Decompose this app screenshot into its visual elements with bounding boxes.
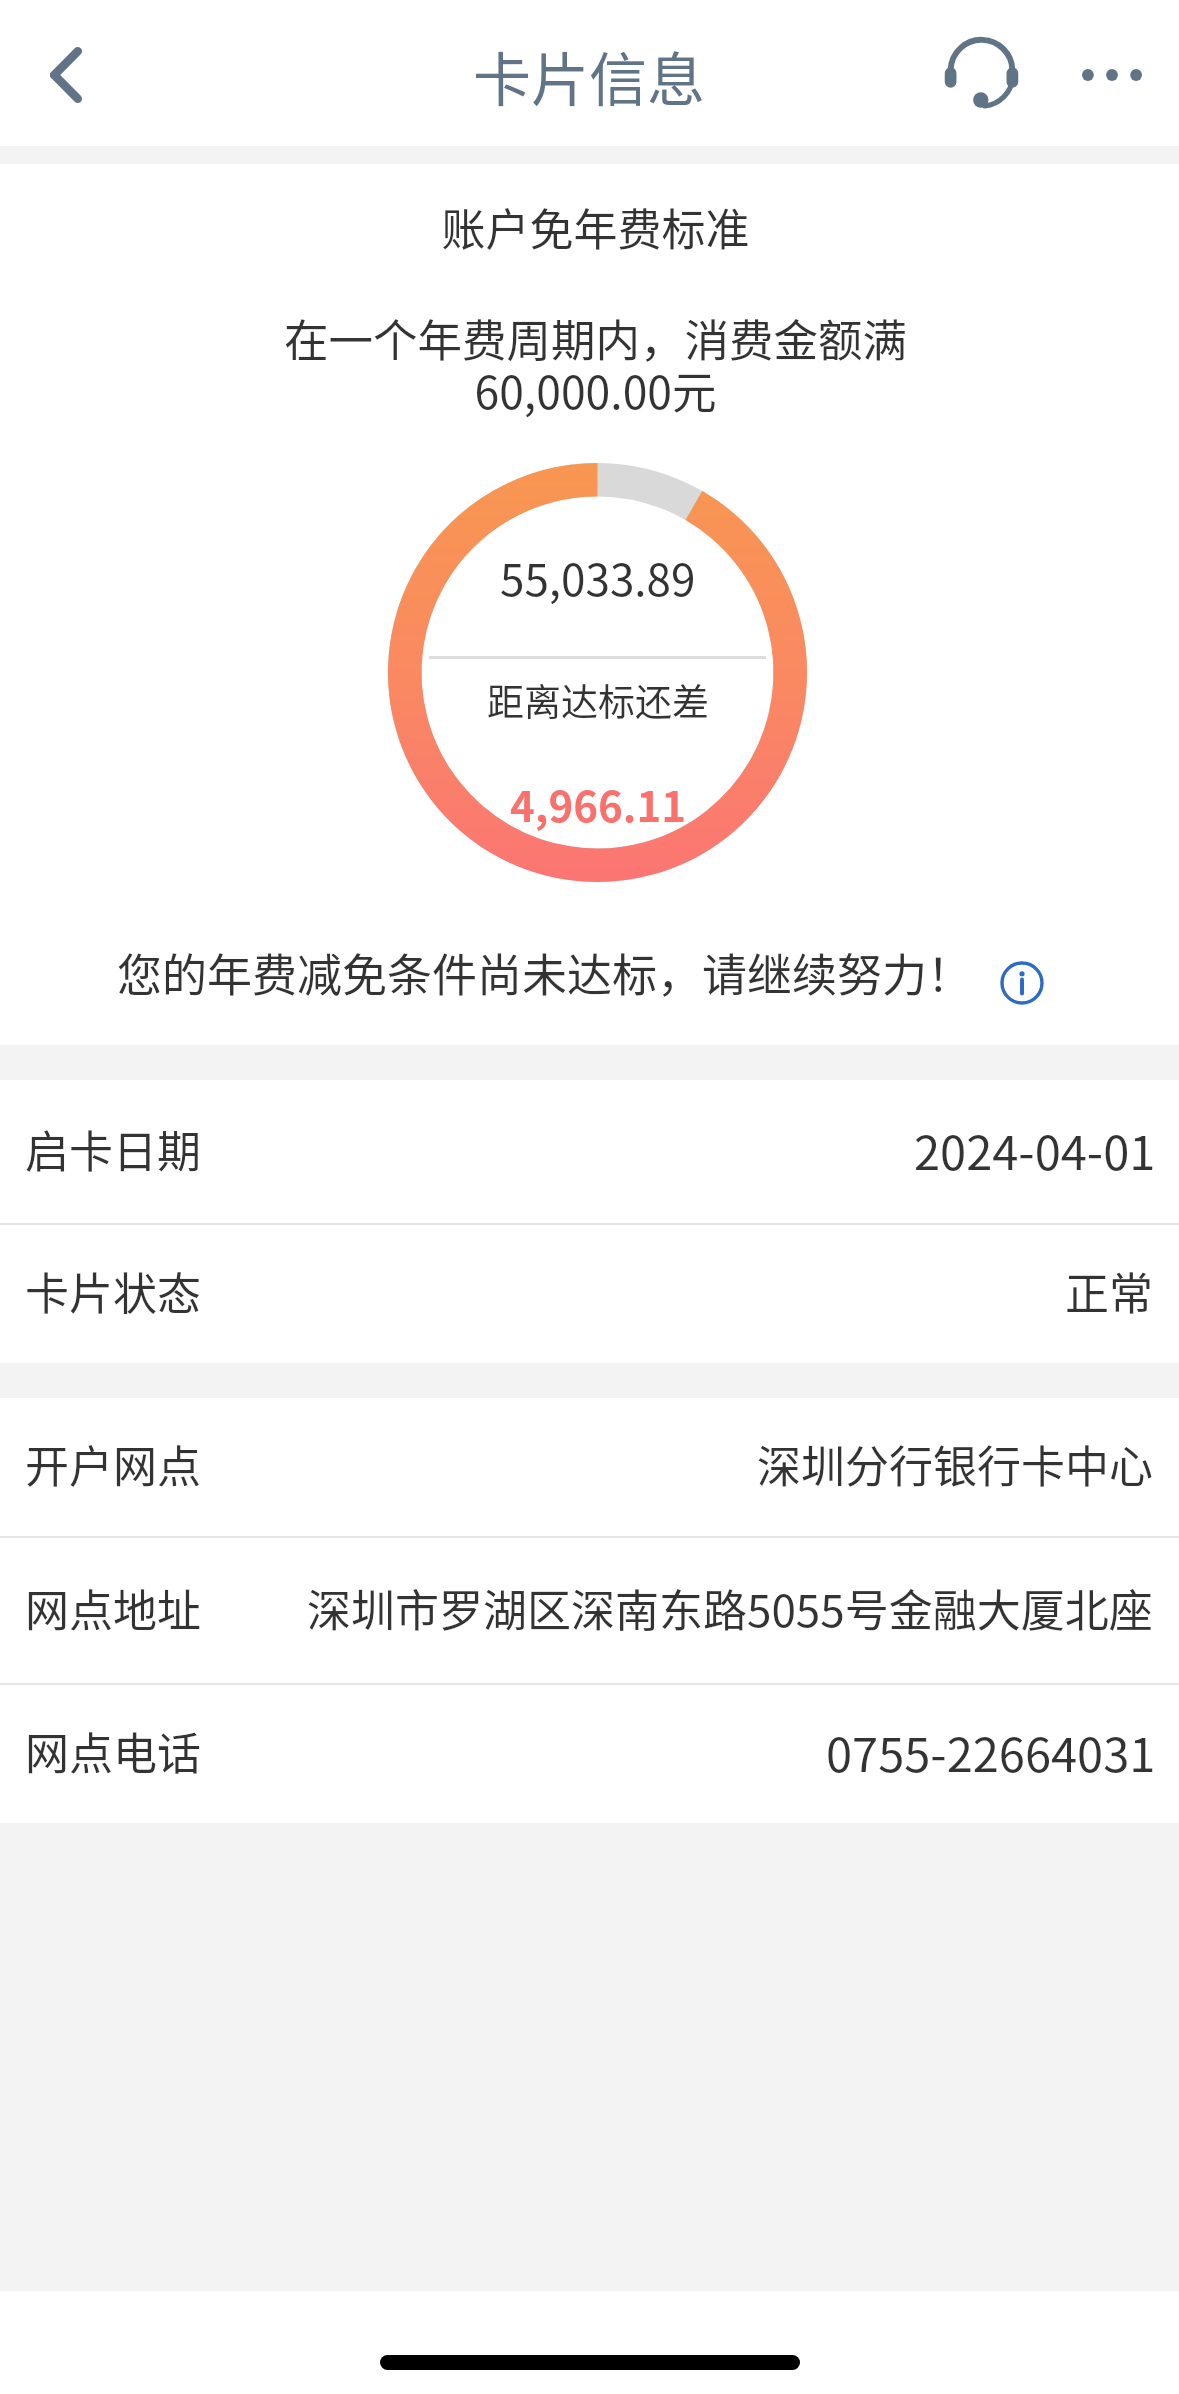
button[interactable]: 启卡日期: [0, 1080, 1179, 1223]
staticText: 正常: [1065, 1259, 1153, 1323]
staticText: 在一个年费周期内，消费金额满 60,000.00元: [6, 305, 1179, 422]
staticText: 开户网点: [25, 1432, 201, 1496]
staticText: 卡片状态: [25, 1259, 201, 1323]
staticText: 深圳分行银行卡中心: [757, 1432, 1153, 1496]
staticText: 距离达标还差: [487, 673, 709, 727]
button[interactable]: More options: [1066, 20, 1158, 130]
staticText: 0755-22664031: [826, 1717, 1156, 1785]
staticText: 网点电话: [25, 1719, 201, 1783]
button[interactable]: 开户网点: [0, 1398, 1179, 1536]
staticText: 网点地址: [25, 1576, 201, 1640]
staticText: 2024-04-01: [914, 1115, 1156, 1183]
button[interactable]: 网点电话: [0, 1685, 1179, 1823]
button[interactable]: 网点地址: [0, 1538, 1179, 1683]
staticText: 55,033.89: [500, 545, 696, 609]
staticText: 4,966.11: [510, 773, 686, 834]
staticText: 账户免年费标准: [6, 195, 1179, 259]
staticText: 启卡日期: [25, 1117, 201, 1181]
staticText: 卡片信息: [473, 34, 706, 118]
staticText: 您的年费减免条件尚未达标，请继续努力！: [117, 940, 973, 1005]
button[interactable]: Information: [979, 940, 1065, 1026]
button[interactable]: 卡片状态: [0, 1225, 1179, 1363]
staticText: 深圳市罗湖区深南东路5055号金融大厦北座: [307, 1576, 1153, 1640]
button[interactable]: Back: [18, 27, 114, 123]
button[interactable]: Customer service: [926, 18, 1036, 128]
